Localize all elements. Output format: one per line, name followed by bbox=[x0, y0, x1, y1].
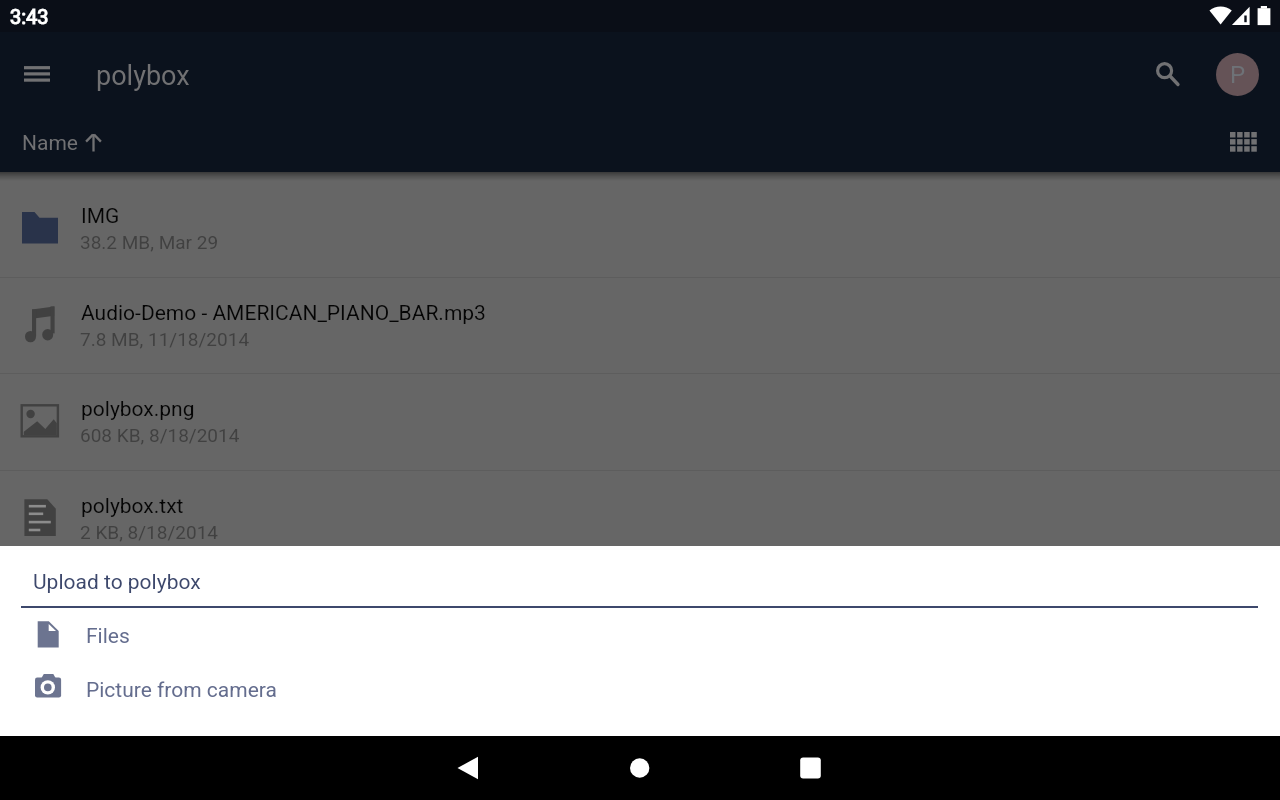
staticText: Name bbox=[22, 131, 78, 156]
button[interactable]: Back bbox=[420, 736, 516, 800]
staticText: Picture from camera bbox=[86, 678, 277, 703]
button[interactable]: IMG bbox=[0, 179, 1280, 276]
staticText: P bbox=[1230, 61, 1246, 89]
staticText: 7.8 MB, 11/18/2014 bbox=[80, 328, 250, 350]
staticText: 608 KB, 8/18/2014 bbox=[80, 424, 240, 446]
button[interactable]: Account bbox=[1216, 53, 1259, 96]
staticText: IMG bbox=[81, 204, 120, 229]
button[interactable]: Search bbox=[1141, 47, 1189, 95]
staticText: 38.2 MB, Mar 29 bbox=[80, 231, 219, 253]
button[interactable]: Name bbox=[12, 124, 108, 166]
staticText: polybox bbox=[96, 60, 190, 92]
staticText: Audio-Demo - AMERICAN_PIANO_BAR.mp3 bbox=[81, 301, 486, 326]
button[interactable]: Home bbox=[592, 736, 688, 800]
staticText: polybox.png bbox=[81, 397, 195, 422]
button[interactable]: Files bbox=[0, 612, 1280, 664]
staticText: Upload to polybox bbox=[33, 570, 201, 595]
staticText: 2 KB, 8/18/2014 bbox=[80, 521, 219, 543]
button[interactable]: Audio-Demo - AMERICAN_PIANO_BAR.mp3 bbox=[0, 276, 1280, 373]
button[interactable]: Open navigation drawer bbox=[13, 51, 61, 99]
button[interactable]: Switch to grid view bbox=[1222, 124, 1264, 164]
button[interactable]: Picture from camera bbox=[0, 665, 1280, 717]
staticText: Files bbox=[86, 624, 130, 649]
button[interactable]: polybox.txt bbox=[0, 469, 1280, 566]
button[interactable]: Recent apps bbox=[762, 736, 858, 800]
button[interactable]: polybox.png bbox=[0, 372, 1280, 469]
staticText: polybox.txt bbox=[81, 494, 184, 519]
staticText: 3:43 bbox=[10, 5, 49, 28]
